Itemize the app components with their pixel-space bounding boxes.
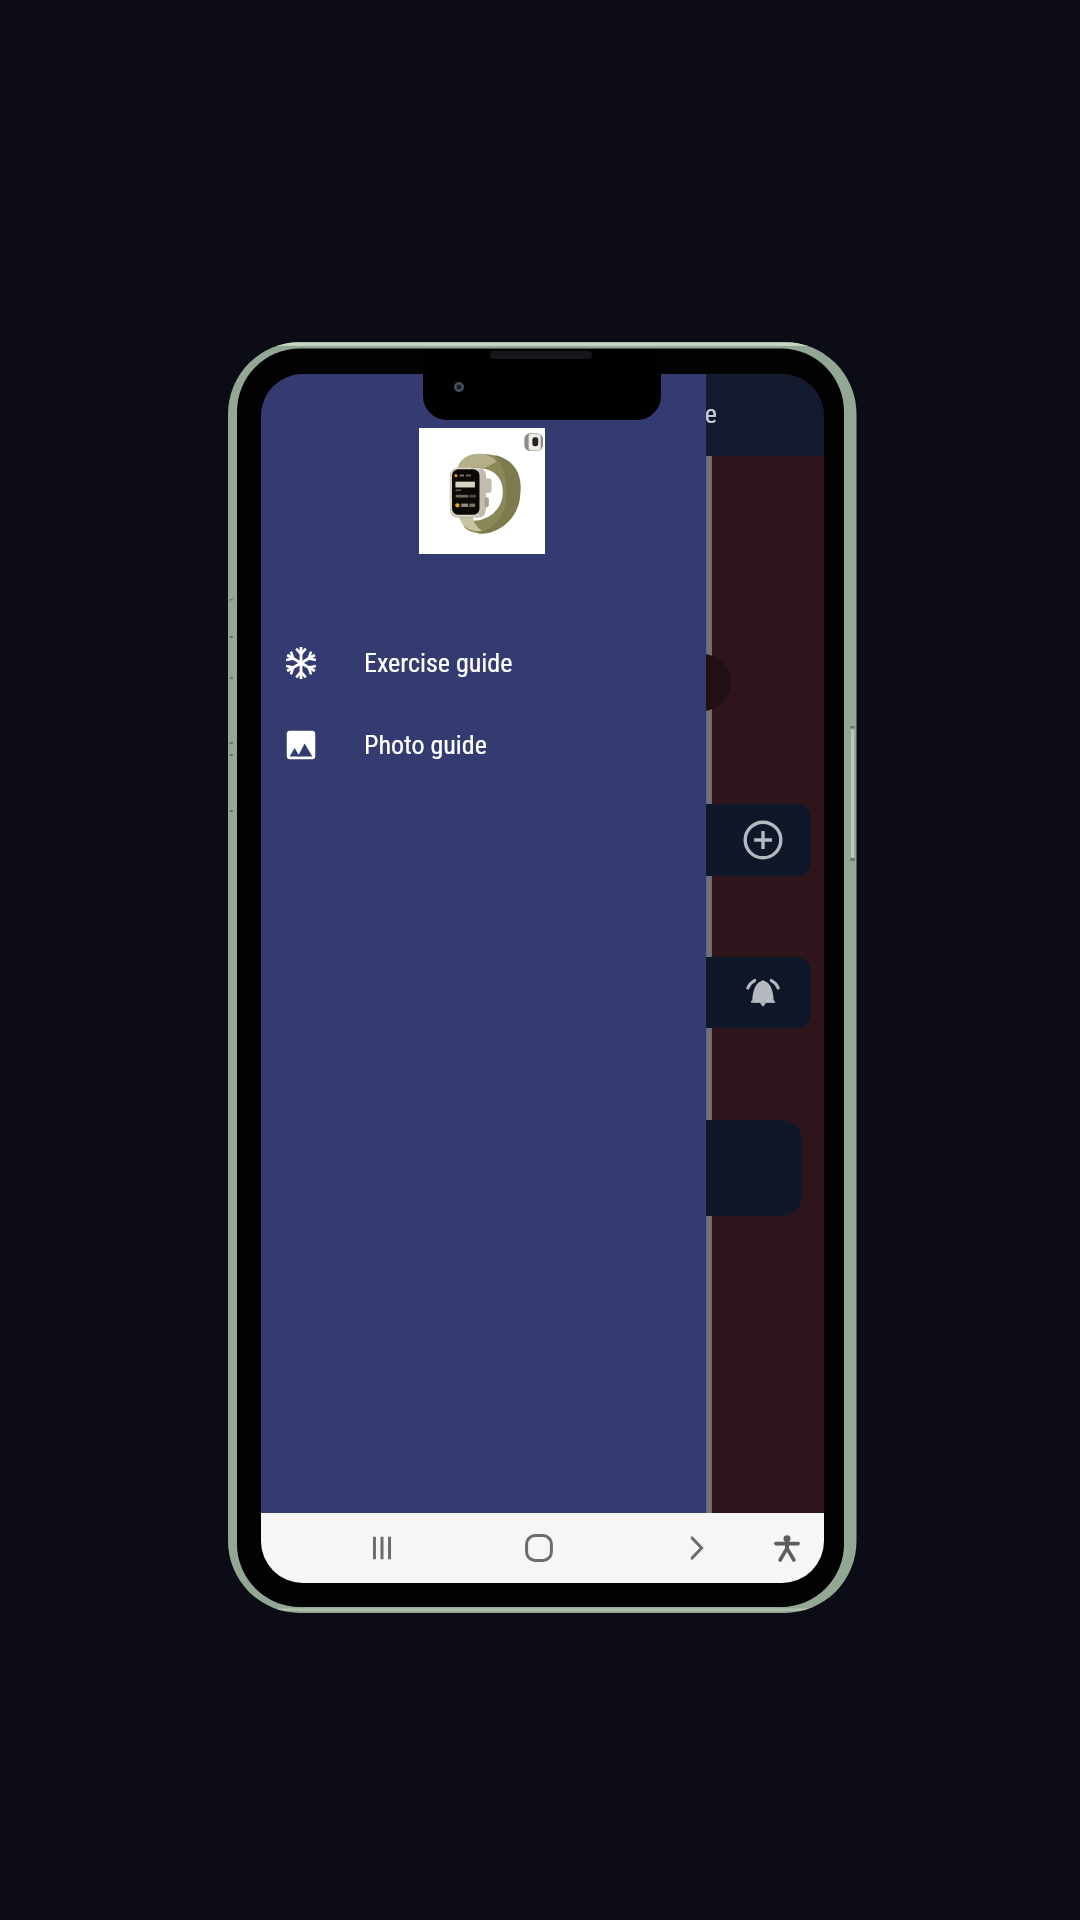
button[interactable]: Home — [509, 1518, 569, 1578]
staticText: Photo guide — [364, 730, 487, 760]
button[interactable]: Back — [666, 1518, 726, 1578]
button[interactable]: Exercise guide — [261, 634, 706, 692]
button[interactable]: Add — [491, 804, 811, 876]
staticText: Exercise guide — [364, 648, 513, 678]
staticText: Home — [656, 399, 717, 429]
button[interactable]: Recents — [352, 1518, 412, 1578]
button[interactable]: Photo guide — [261, 716, 706, 774]
button[interactable]: Apple Watch Ultra product photo — [419, 428, 545, 554]
button[interactable]: Accessibility — [757, 1518, 817, 1578]
button[interactable] — [482, 1120, 802, 1216]
button[interactable]: Notifications — [491, 957, 811, 1028]
